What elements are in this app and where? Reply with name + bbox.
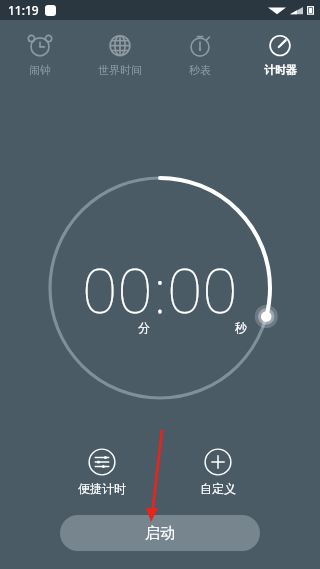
staticText: 00 (167, 247, 238, 331)
staticText: 计时器 (264, 63, 297, 77)
staticText: 11:19 (8, 2, 39, 18)
button[interactable]: 便捷计时 (64, 448, 140, 496)
staticText: 便捷计时 (78, 481, 126, 496)
staticText: : (153, 247, 167, 331)
staticText: 启动 (145, 524, 175, 543)
staticText: 分 (138, 320, 150, 335)
button[interactable]: 闹钟 (0, 26, 80, 81)
button[interactable]: 启动 (60, 515, 260, 551)
button[interactable]: 自定义 (180, 448, 256, 496)
staticText: 自定义 (200, 481, 236, 496)
staticText: 秒 (235, 320, 247, 335)
staticText: 世界时间 (98, 63, 142, 77)
button[interactable]: 秒表 (160, 26, 240, 81)
button[interactable]: 计时器 (240, 26, 320, 81)
staticText: 秒表 (189, 63, 211, 77)
button[interactable]: 世界时间 (80, 26, 160, 81)
staticText: 闹钟 (29, 63, 51, 77)
staticText: 00 (82, 247, 153, 331)
